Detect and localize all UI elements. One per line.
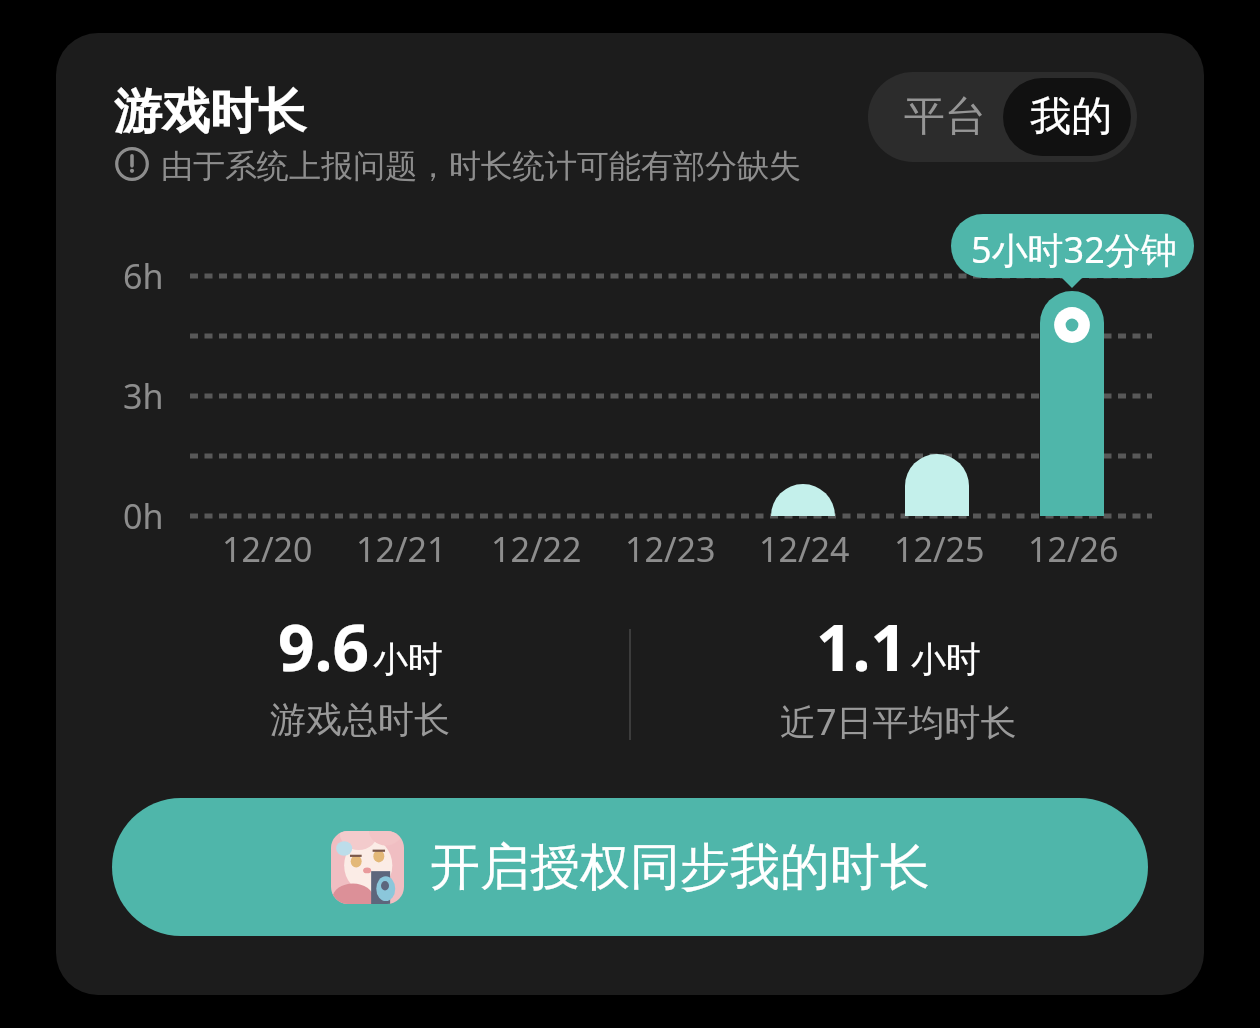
staticText: 12/22	[491, 526, 582, 572]
staticText: 12/20	[222, 526, 313, 572]
staticText: 游戏时长	[114, 82, 306, 142]
staticText: 小时	[373, 637, 443, 681]
staticText: 12/24	[759, 526, 850, 572]
staticText: 平台	[904, 91, 986, 143]
button[interactable]: 5小时32分钟	[951, 214, 1194, 278]
button[interactable]: 平台	[868, 72, 1011, 162]
staticText: 12/25	[894, 526, 985, 572]
other: 提示	[115, 147, 149, 181]
staticText: 由于系统上报问题，时长统计可能有部分缺失	[161, 146, 801, 186]
staticText: 3h	[123, 373, 164, 419]
staticText: 0h	[123, 493, 164, 539]
staticText: 开启授权同步我的时长	[430, 836, 930, 899]
button[interactable]: 游戏图标	[112, 798, 1148, 936]
staticText: 12/26	[1028, 526, 1119, 572]
staticText: 1.1	[816, 603, 908, 690]
staticText: 6h	[123, 253, 164, 299]
staticText: 近7日平均时长	[780, 697, 1017, 746]
staticText: 5小时32分钟	[971, 225, 1177, 274]
button[interactable]: 我的	[1003, 78, 1131, 156]
staticText: 游戏总时长	[270, 697, 450, 742]
other: 游戏图标	[331, 831, 404, 904]
staticText: 12/21	[356, 526, 447, 572]
staticText: 我的	[1030, 91, 1112, 143]
staticText: 小时	[911, 637, 981, 681]
staticText: 9.6	[278, 603, 370, 690]
staticText: 12/23	[625, 526, 716, 572]
